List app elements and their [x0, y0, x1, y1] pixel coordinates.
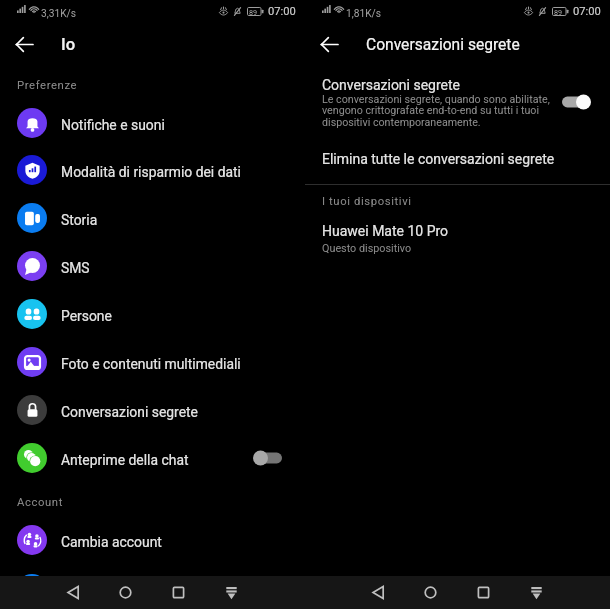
- button[interactable]: Back: [6, 26, 42, 62]
- staticText: Le conversazioni segrete, quando sono ab…: [322, 93, 550, 129]
- staticText: Foto e contenuti multimediali: [61, 356, 241, 372]
- staticText: Notifiche e suoni: [61, 117, 165, 133]
- button[interactable]: Back: [47, 576, 99, 609]
- button[interactable]: Hide navigation bar: [205, 576, 258, 609]
- staticText: 1,81K/s: [346, 8, 382, 20]
- button[interactable]: Hide navigation bar: [510, 576, 563, 609]
- button[interactable]: Persone: [0, 290, 305, 338]
- button[interactable]: Foto e contenuti multimediali: [0, 338, 305, 386]
- staticText: Io: [61, 35, 76, 54]
- staticText: Conversazioni segrete: [61, 404, 198, 420]
- button[interactable]: Elimina tutte le conversazioni segrete: [305, 144, 610, 174]
- button[interactable]: Back: [311, 26, 347, 62]
- staticText: SMS: [61, 260, 90, 276]
- button[interactable]: Modalità di risparmio dei dati: [0, 146, 305, 194]
- button[interactable]: Notifiche e suoni: [0, 99, 305, 147]
- button[interactable]: [305, 70, 610, 132]
- staticText: Storia: [61, 212, 98, 228]
- staticText: Persone: [61, 308, 112, 324]
- staticText: I tuoi dispositivi: [322, 195, 412, 208]
- button[interactable]: Conversazioni segrete: [0, 386, 305, 434]
- button[interactable]: Switch on: [560, 93, 591, 111]
- staticText: Cambia account: [61, 534, 162, 550]
- staticText: Questo dispositivo: [322, 242, 412, 255]
- staticText: Conversazioni segrete: [366, 36, 520, 54]
- staticText: 89: [249, 8, 258, 16]
- button[interactable]: Home: [99, 576, 152, 609]
- staticText: Modalità di risparmio dei dati: [61, 164, 241, 180]
- button[interactable]: Anteprime della chat: [0, 434, 305, 482]
- staticText: 07:00: [573, 5, 601, 18]
- staticText: Huawei Mate 10 Pro: [322, 223, 449, 239]
- staticText: Elimina tutte le conversazioni segrete: [322, 151, 555, 167]
- button[interactable]: SMS: [0, 242, 305, 290]
- button[interactable]: Cambia account: [0, 516, 305, 564]
- staticText: 07:00: [268, 5, 296, 18]
- staticText: 3,31K/s: [41, 8, 77, 20]
- button[interactable]: Switch off: [253, 449, 284, 467]
- button[interactable]: Home: [404, 576, 457, 609]
- button[interactable]: Back: [352, 576, 404, 609]
- staticText: Anteprime della chat: [61, 452, 189, 468]
- staticText: Account: [17, 496, 64, 509]
- button[interactable]: Recents: [457, 576, 510, 609]
- button[interactable]: Recents: [152, 576, 205, 609]
- staticText: 89: [554, 8, 563, 16]
- button[interactable]: Storia: [0, 194, 305, 242]
- staticText: Preferenze: [17, 79, 78, 92]
- button[interactable]: [305, 216, 610, 260]
- staticText: Conversazioni segrete: [322, 77, 461, 93]
